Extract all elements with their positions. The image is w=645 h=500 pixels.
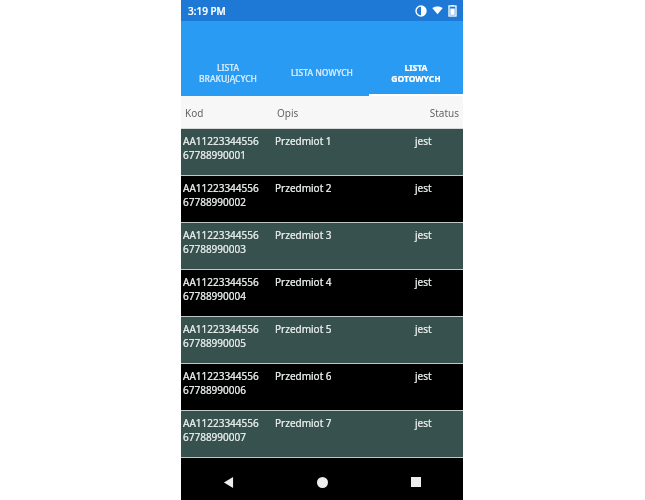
staticText: Opis <box>277 106 299 120</box>
staticText: jest <box>415 181 432 195</box>
button[interactable]: Home <box>275 464 369 500</box>
staticText: 67788990001 <box>183 148 246 162</box>
staticText: Kod <box>185 106 204 120</box>
staticText: jest <box>415 134 432 148</box>
staticText: 67788990004 <box>183 289 246 303</box>
staticText: Przedmiot 1 <box>275 134 332 148</box>
staticText: AA11223344556 <box>183 134 259 148</box>
staticText: 67788990006 <box>183 383 246 397</box>
staticText: Przedmiot 7 <box>275 416 332 430</box>
button[interactable]: Recent apps <box>369 464 463 500</box>
button[interactable]: AA11223344556 <box>181 129 463 176</box>
staticText: AA11223344556 <box>183 181 259 195</box>
button[interactable]: AA11223344556 <box>181 223 463 270</box>
staticText: 67788990007 <box>183 430 246 444</box>
button[interactable]: AA11223344556 <box>181 411 463 458</box>
button[interactable]: Back <box>181 464 275 500</box>
button[interactable]: AA11223344556 <box>181 364 463 411</box>
staticText: AA11223344556 <box>183 275 259 289</box>
staticText: 67788990005 <box>183 336 246 350</box>
staticText: Przedmiot 6 <box>275 369 332 383</box>
staticText: AA11223344556 <box>183 322 259 336</box>
staticText: AA11223344556 <box>183 416 259 430</box>
staticText: Przedmiot 3 <box>275 228 332 242</box>
staticText: AA11223344556 <box>183 228 259 242</box>
staticText: 3:19 PM <box>188 4 226 18</box>
staticText: LISTA NOWYCH <box>291 67 353 79</box>
button[interactable]: LISTA GOTOWYCH <box>369 54 463 96</box>
staticText: Status <box>407 106 459 120</box>
staticText: jest <box>415 369 432 383</box>
staticText: LISTA GOTOWYCH <box>391 62 441 84</box>
staticText: jest <box>415 322 432 336</box>
button[interactable]: LISTA BRAKUJĄCYCH <box>181 54 275 96</box>
staticText: Przedmiot 5 <box>275 322 332 336</box>
staticText: jest <box>415 228 432 242</box>
button[interactable]: AA11223344556 <box>181 270 463 317</box>
staticText: AA11223344556 <box>183 369 259 383</box>
staticText: jest <box>415 416 432 430</box>
staticText: Przedmiot 4 <box>275 275 332 289</box>
staticText: Przedmiot 2 <box>275 181 332 195</box>
staticText: 67788990002 <box>183 195 246 209</box>
staticText: 67788990003 <box>183 242 246 256</box>
button[interactable]: AA11223344556 <box>181 176 463 223</box>
button[interactable]: AA11223344556 <box>181 317 463 364</box>
staticText: jest <box>415 275 432 289</box>
button[interactable]: LISTA NOWYCH <box>275 54 369 96</box>
staticText: LISTA BRAKUJĄCYCH <box>199 62 257 84</box>
